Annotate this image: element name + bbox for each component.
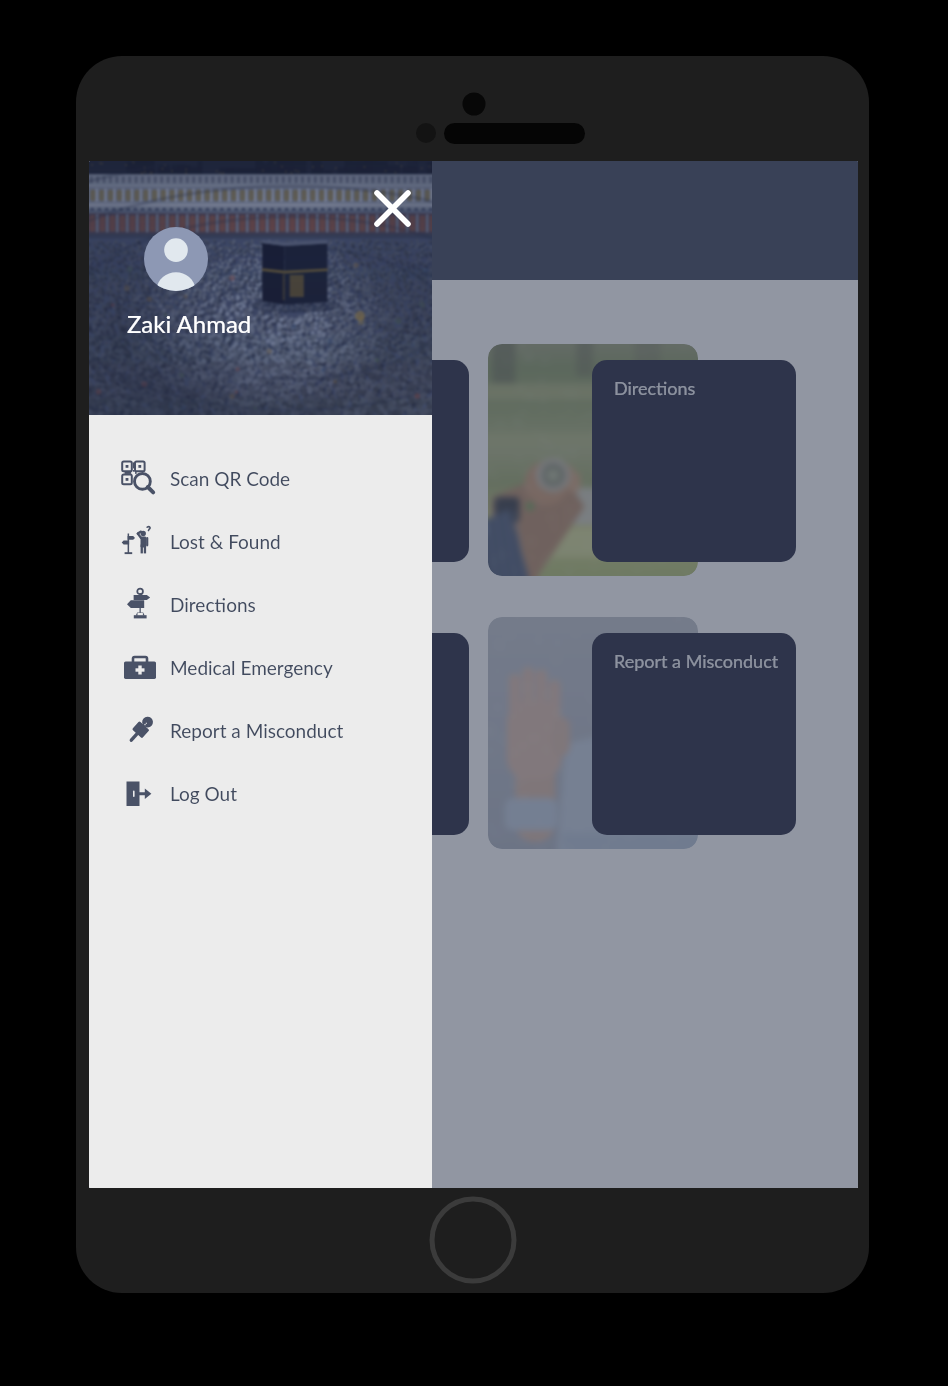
button[interactable]: Report a Misconduct [89, 699, 432, 762]
button[interactable]: Directions [592, 360, 796, 562]
staticText: Log Out [170, 782, 238, 805]
staticText: Scan QR [287, 377, 355, 399]
button[interactable]: Scan QR Code [89, 447, 432, 510]
staticText: Medical Emergency [170, 656, 333, 679]
button[interactable]: Medical Emergency [89, 636, 432, 699]
staticText: Zaki Ahmad [127, 309, 252, 338]
button[interactable]: Lost & Found [89, 510, 432, 573]
button[interactable]: Medical [265, 633, 469, 835]
staticText: Report a Misconduct [614, 650, 779, 672]
staticText: Report a Misconduct [170, 719, 344, 742]
button[interactable]: Report a Misconduct [592, 633, 796, 835]
button[interactable]: Log Out [89, 762, 432, 825]
staticText: Medical [287, 650, 350, 672]
button[interactable]: Scan QR [265, 360, 469, 562]
staticText: Lost & Found [170, 530, 281, 553]
button[interactable]: Close navigation drawer [371, 187, 414, 230]
button[interactable]: Directions [89, 573, 432, 636]
staticText: Directions [170, 593, 256, 616]
staticText: Scan QR Code [170, 467, 291, 490]
staticText: Directions [614, 377, 696, 399]
